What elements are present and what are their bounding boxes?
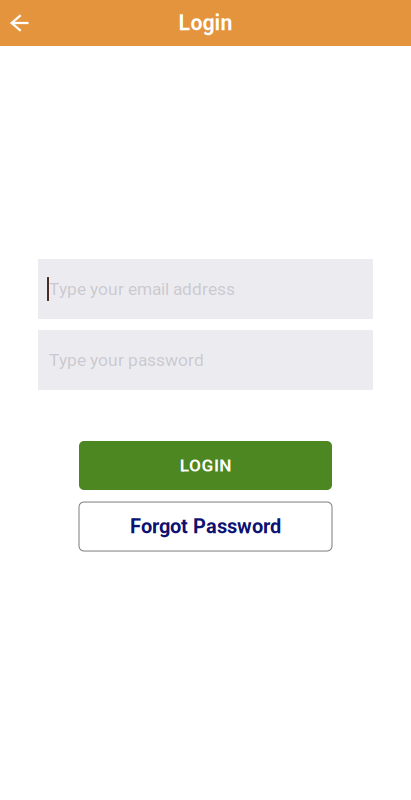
- button[interactable]: LOGIN: [79, 441, 332, 490]
- staticText: Login: [178, 10, 232, 35]
- staticText: Type your email address: [49, 279, 235, 299]
- staticText: Type your password: [49, 350, 204, 370]
- button[interactable]: Back: [0, 0, 40, 46]
- button[interactable]: Forgot Password: [79, 502, 332, 551]
- staticText: LOGIN: [180, 455, 231, 476]
- staticText: Forgot Password: [130, 515, 281, 538]
